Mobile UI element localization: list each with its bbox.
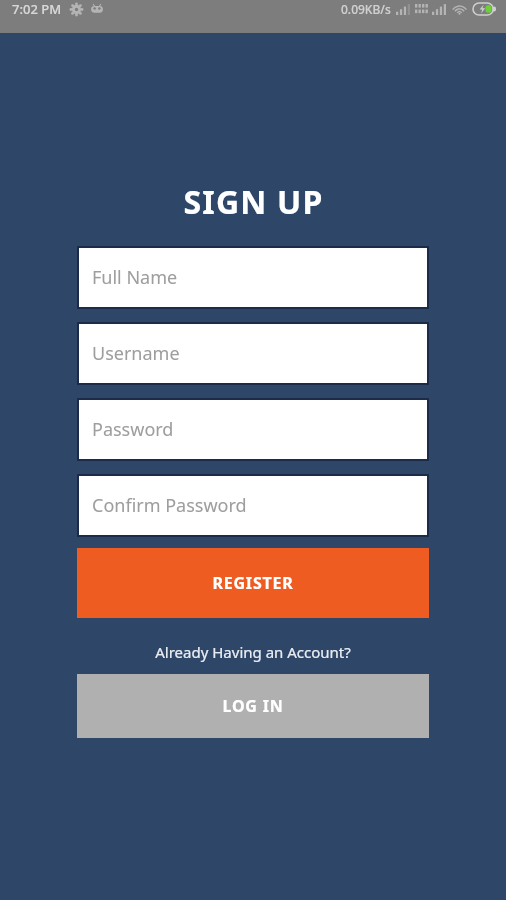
staticText: Full Name [92,265,178,290]
button[interactable]: REGISTER [77,548,429,618]
staticText: 7:02 PM [12,0,62,18]
staticText: Username [92,341,180,366]
staticText: Confirm Password [92,493,247,518]
button[interactable]: Username [77,322,429,385]
staticText: Password [92,417,174,442]
button[interactable]: Password [77,398,429,461]
staticText: SIGN UP [183,180,324,224]
staticText: 0.09KB/s [341,1,391,17]
staticText: Already Having an Account? [155,642,351,662]
button[interactable]: LOG IN [77,674,429,738]
staticText: REGISTER [212,572,294,594]
staticText: LOG IN [222,695,284,717]
button[interactable]: Confirm Password [77,474,429,537]
button[interactable]: Full Name [77,246,429,309]
